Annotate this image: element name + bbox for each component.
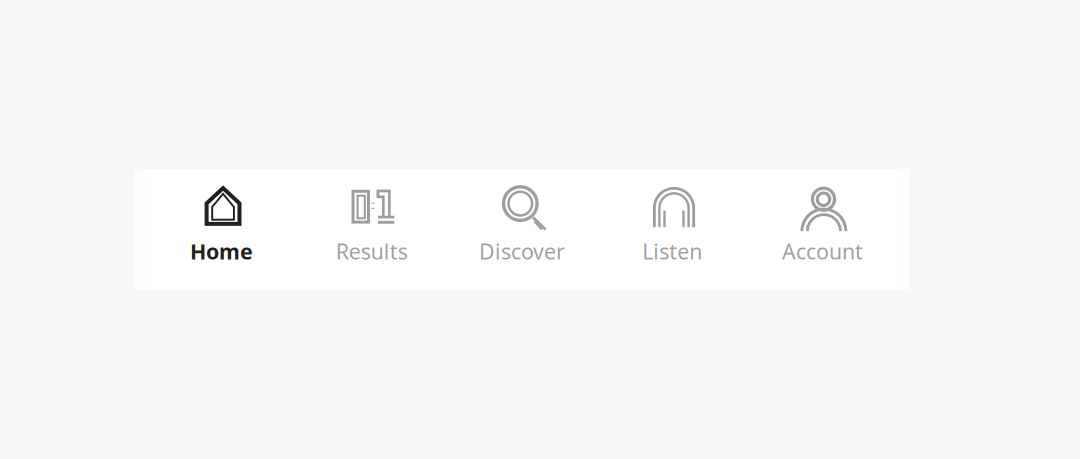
- button[interactable]: Discover: [447, 169, 597, 290]
- staticText: Home: [190, 237, 253, 265]
- button[interactable]: Home: [146, 169, 296, 290]
- staticText: Results: [336, 237, 408, 265]
- button[interactable]: Listen: [597, 169, 747, 290]
- button[interactable]: Results: [297, 169, 447, 290]
- button[interactable]: Account: [747, 169, 898, 290]
- staticText: Listen: [642, 237, 702, 265]
- staticText: Discover: [479, 237, 565, 265]
- staticText: Account: [782, 237, 863, 265]
